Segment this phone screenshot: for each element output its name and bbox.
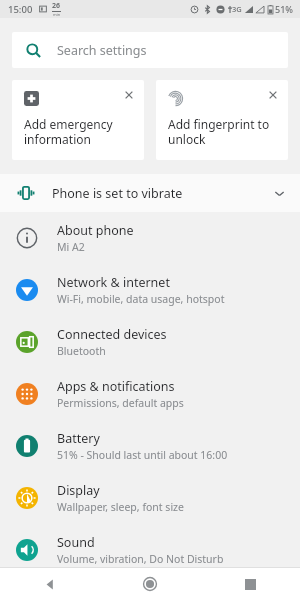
staticText: 3G bbox=[232, 4, 242, 14]
staticText: Volume, vibration, Do Not Disturb bbox=[57, 552, 224, 566]
button[interactable]: Network & internet bbox=[0, 264, 300, 316]
staticText: Sound bbox=[57, 534, 95, 551]
staticText: Permissions, default apps bbox=[57, 396, 184, 410]
staticText: Add emergency information bbox=[24, 116, 113, 147]
button[interactable]: Sound bbox=[0, 524, 300, 576]
staticText: 51% - Should last until about 16:00 bbox=[57, 448, 228, 462]
staticText: min bbox=[53, 12, 61, 17]
staticText: Wi-Fi, mobile, data usage, hotspot bbox=[57, 292, 225, 306]
staticText: Add fingerprint to unlock bbox=[168, 116, 270, 147]
button[interactable]: Dismiss bbox=[122, 88, 136, 102]
button[interactable]: Search settings bbox=[12, 32, 288, 68]
staticText: Wallpaper, sleep, font size bbox=[57, 500, 184, 514]
button[interactable]: Phone is set to vibrate bbox=[0, 174, 300, 212]
staticText: Connected devices bbox=[57, 326, 167, 343]
staticText: Bluetooth bbox=[57, 344, 106, 358]
staticText: Network & internet bbox=[57, 274, 170, 291]
button[interactable]: About phone bbox=[0, 212, 300, 264]
button[interactable]: Back bbox=[0, 568, 100, 600]
staticText: 15:00 bbox=[8, 3, 33, 16]
staticText: Phone is set to vibrate bbox=[52, 185, 183, 202]
button[interactable]: Connected devices bbox=[0, 316, 300, 368]
staticText: 51% bbox=[275, 3, 293, 15]
staticText: Apps & notifications bbox=[57, 378, 175, 395]
button[interactable]: Battery bbox=[0, 420, 300, 472]
button[interactable]: Dismiss bbox=[156, 80, 288, 160]
staticText: Mi A2 bbox=[57, 240, 85, 254]
button[interactable]: Home bbox=[100, 568, 200, 600]
button[interactable]: Recent apps bbox=[200, 568, 300, 600]
button[interactable]: Display bbox=[0, 472, 300, 524]
staticText: Search settings bbox=[57, 42, 147, 59]
button[interactable]: Dismiss bbox=[12, 80, 144, 160]
staticText: Battery bbox=[57, 430, 100, 447]
button[interactable]: Dismiss bbox=[266, 88, 280, 102]
staticText: About phone bbox=[57, 222, 134, 239]
staticText: 26 bbox=[52, 1, 61, 11]
staticText: Display bbox=[57, 482, 100, 499]
button[interactable]: Apps & notifications bbox=[0, 368, 300, 420]
